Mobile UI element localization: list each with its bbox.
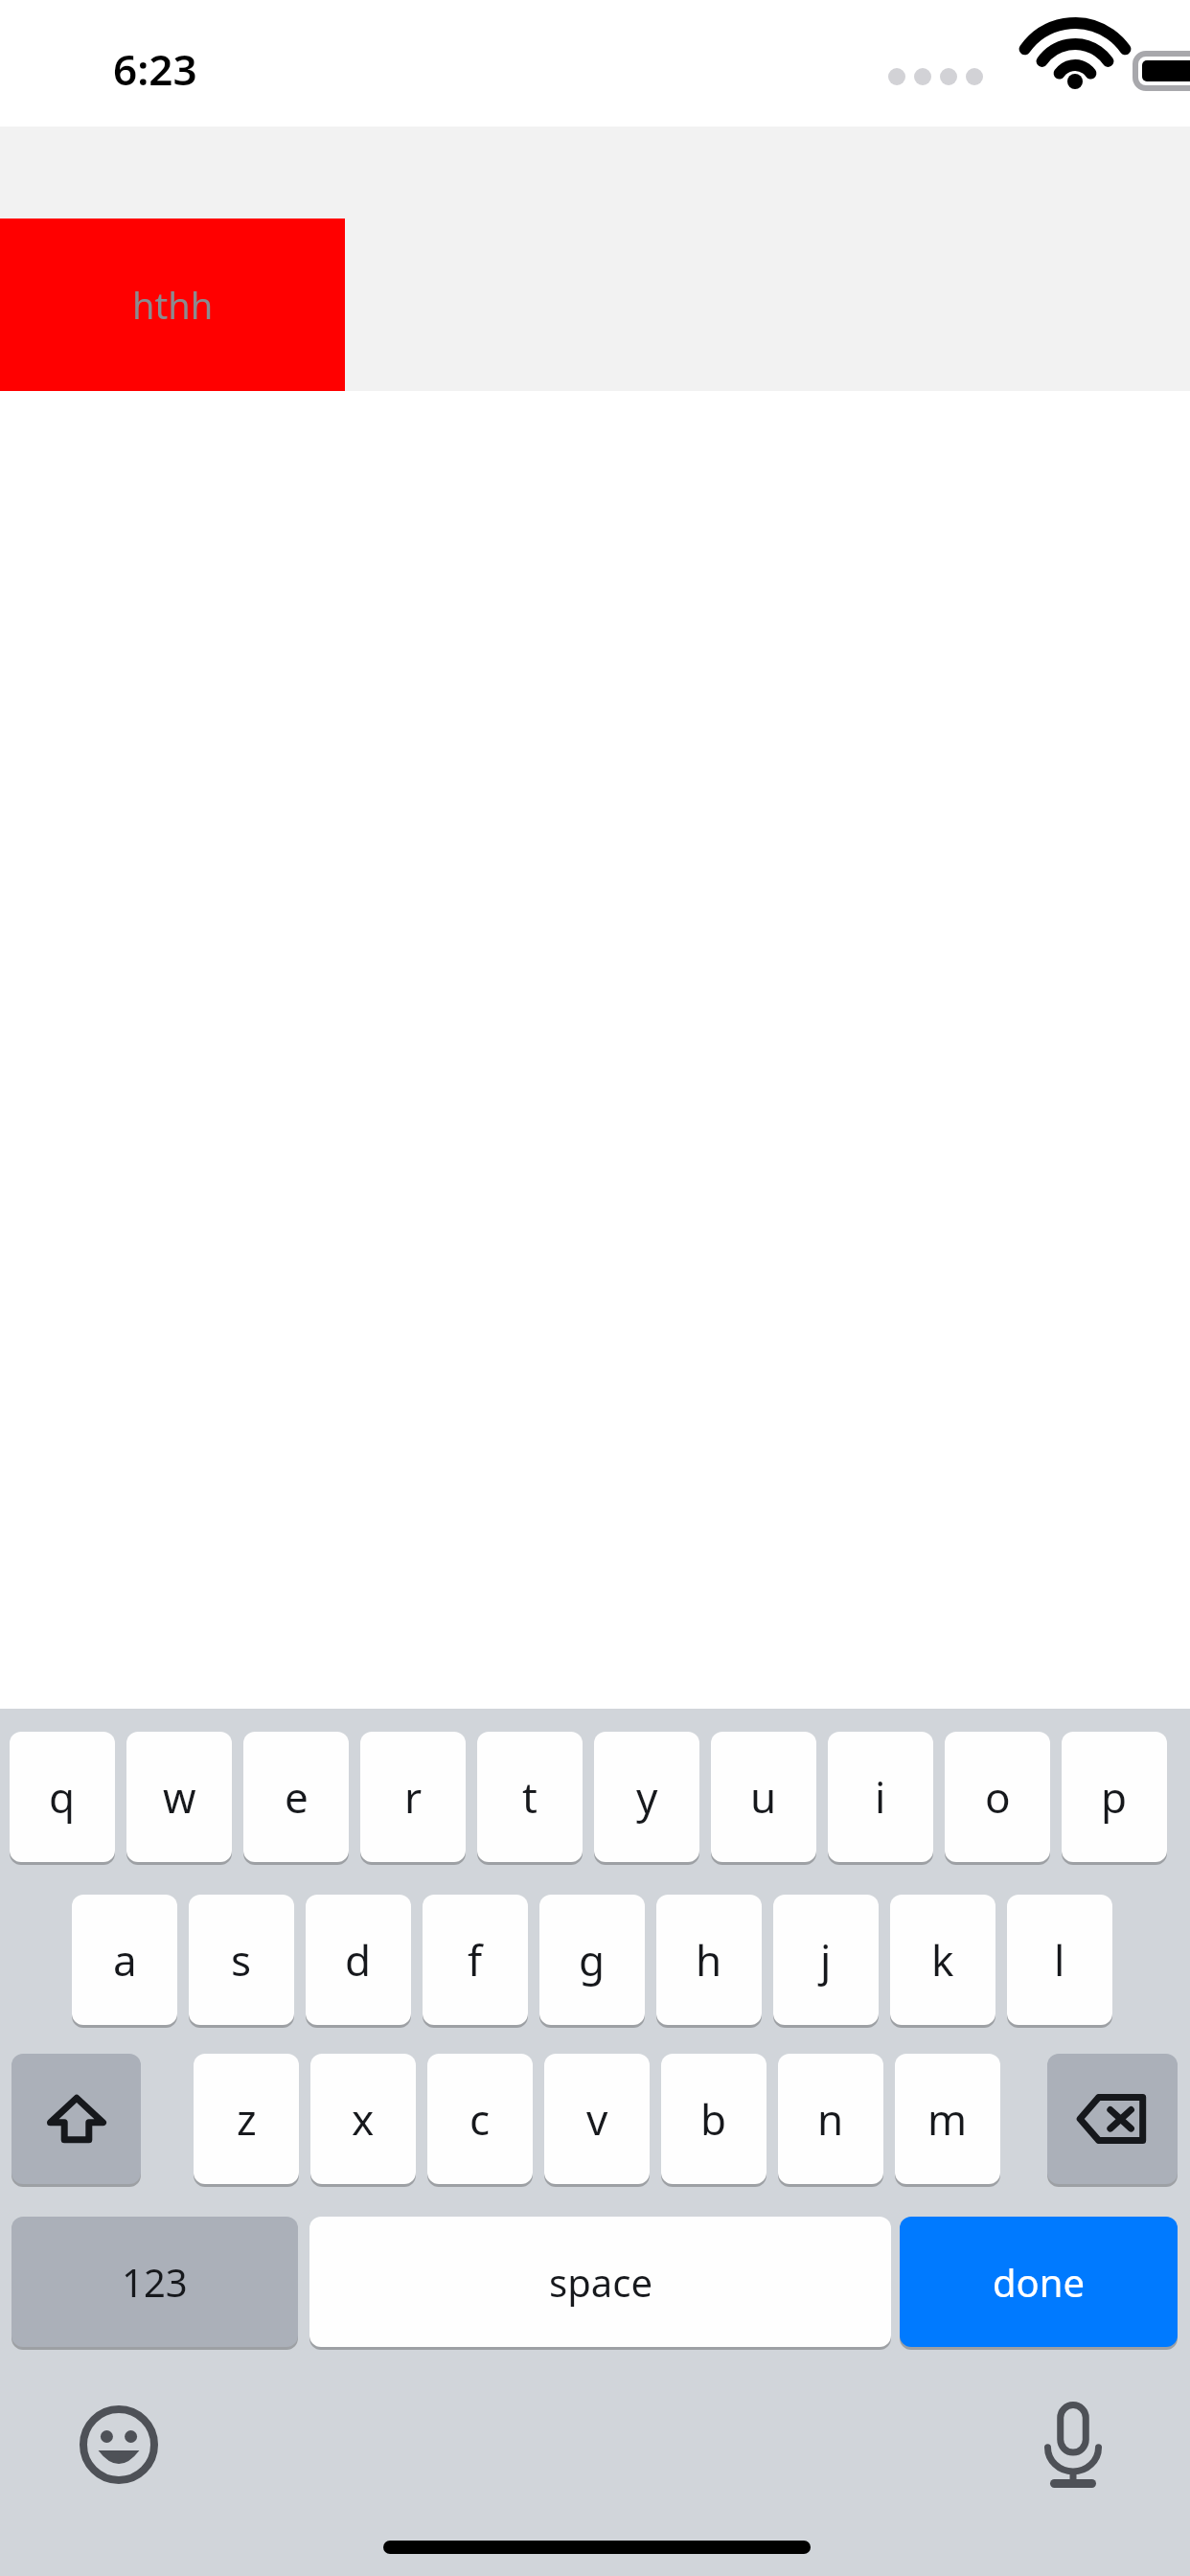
button[interactable]: f — [423, 1895, 528, 2025]
staticText: s — [231, 1931, 252, 1989]
button[interactable]: g — [539, 1895, 645, 2025]
button[interactable]: m — [895, 2054, 1000, 2184]
button[interactable]: s — [189, 1895, 294, 2025]
button[interactable]: l — [1007, 1895, 1112, 2025]
staticText: k — [931, 1931, 954, 1989]
button[interactable]: j — [773, 1895, 879, 2025]
button[interactable]: p — [1062, 1732, 1167, 1862]
button[interactable]: e — [243, 1732, 349, 1862]
button[interactable]: space — [309, 2217, 891, 2347]
staticText: space — [549, 2256, 652, 2308]
staticText: 123 — [122, 2256, 188, 2308]
button[interactable]: t — [477, 1732, 583, 1862]
button[interactable]: hthh — [0, 218, 345, 391]
staticText: j — [820, 1931, 832, 1989]
staticText: i — [875, 1768, 886, 1826]
staticText: done — [993, 2256, 1086, 2308]
staticText: x — [352, 2090, 375, 2148]
button[interactable]: c — [427, 2054, 533, 2184]
staticText: c — [469, 2090, 491, 2148]
button[interactable]: Backspace — [1047, 2054, 1178, 2184]
staticText: u — [750, 1768, 777, 1826]
staticText: b — [700, 2090, 727, 2148]
button[interactable]: k — [890, 1895, 995, 2025]
button[interactable]: h — [656, 1895, 762, 2025]
staticText: hthh — [132, 280, 214, 330]
staticText: y — [636, 1768, 658, 1826]
button[interactable]: 123 — [11, 2217, 298, 2347]
button[interactable]: i — [828, 1732, 933, 1862]
button[interactable]: x — [310, 2054, 416, 2184]
staticText: o — [985, 1768, 1011, 1826]
button[interactable]: Emoji — [59, 2385, 178, 2504]
staticText: z — [237, 2090, 257, 2148]
button[interactable]: v — [544, 2054, 650, 2184]
button[interactable]: d — [306, 1895, 411, 2025]
button[interactable]: r — [360, 1732, 466, 1862]
staticText: p — [1101, 1768, 1128, 1826]
staticText: q — [49, 1768, 76, 1826]
staticText: h — [696, 1931, 722, 1989]
staticText: v — [586, 2090, 608, 2148]
button[interactable]: q — [10, 1732, 115, 1862]
staticText: d — [345, 1931, 372, 1989]
staticText: m — [927, 2090, 968, 2148]
button[interactable]: u — [711, 1732, 816, 1862]
staticText: w — [163, 1768, 196, 1826]
staticText: e — [285, 1768, 309, 1826]
staticText: l — [1054, 1931, 1065, 1989]
button[interactable]: a — [72, 1895, 177, 2025]
button[interactable]: n — [778, 2054, 883, 2184]
staticText: n — [817, 2090, 844, 2148]
button[interactable]: y — [594, 1732, 699, 1862]
staticText: g — [579, 1931, 606, 1989]
button[interactable]: Dictation — [1014, 2385, 1133, 2504]
staticText: a — [113, 1931, 137, 1989]
button[interactable]: o — [945, 1732, 1050, 1862]
staticText: t — [522, 1768, 538, 1826]
staticText: f — [468, 1931, 483, 1989]
staticText: r — [404, 1768, 423, 1826]
button[interactable]: done — [900, 2217, 1178, 2347]
button[interactable]: Shift — [11, 2054, 141, 2184]
button[interactable]: w — [126, 1732, 232, 1862]
staticText: 6:23 — [113, 40, 197, 98]
button[interactable]: z — [194, 2054, 299, 2184]
button[interactable]: b — [661, 2054, 767, 2184]
